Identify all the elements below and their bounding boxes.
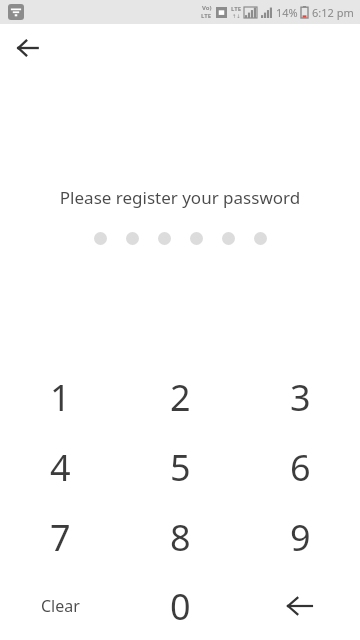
staticText: 7: [50, 513, 71, 562]
staticText: Clear: [41, 595, 80, 617]
staticText: 3: [290, 373, 311, 422]
button[interactable]: 4: [0, 432, 120, 502]
staticText: 5: [170, 443, 191, 492]
staticText: ↑↓: [232, 13, 241, 19]
button[interactable]: Backspace: [240, 572, 360, 640]
staticText: Please register your password: [0, 186, 360, 209]
staticText: 6:12 pm: [312, 5, 354, 20]
staticText: 6: [290, 443, 311, 492]
staticText: 14%: [276, 5, 298, 20]
button[interactable]: 3: [240, 362, 360, 432]
staticText: 1: [50, 373, 71, 422]
button[interactable]: 2: [120, 362, 240, 432]
staticText: LTE: [231, 5, 242, 13]
staticText: 0: [170, 582, 191, 631]
staticText: 9: [290, 513, 311, 562]
button[interactable]: 0: [120, 572, 240, 640]
button[interactable]: 6: [240, 432, 360, 502]
button[interactable]: Clear: [0, 572, 120, 640]
button[interactable]: 8: [120, 502, 240, 572]
button[interactable]: 5: [120, 432, 240, 502]
button[interactable]: 9: [240, 502, 360, 572]
button[interactable]: Back: [4, 24, 52, 72]
staticText: 4: [50, 443, 71, 492]
button[interactable]: 1: [0, 362, 120, 432]
staticText: LTE: [201, 12, 212, 20]
staticText: 8: [170, 513, 191, 562]
staticText: Vo): [202, 4, 212, 12]
button[interactable]: 7: [0, 502, 120, 572]
staticText: 2: [170, 373, 191, 422]
